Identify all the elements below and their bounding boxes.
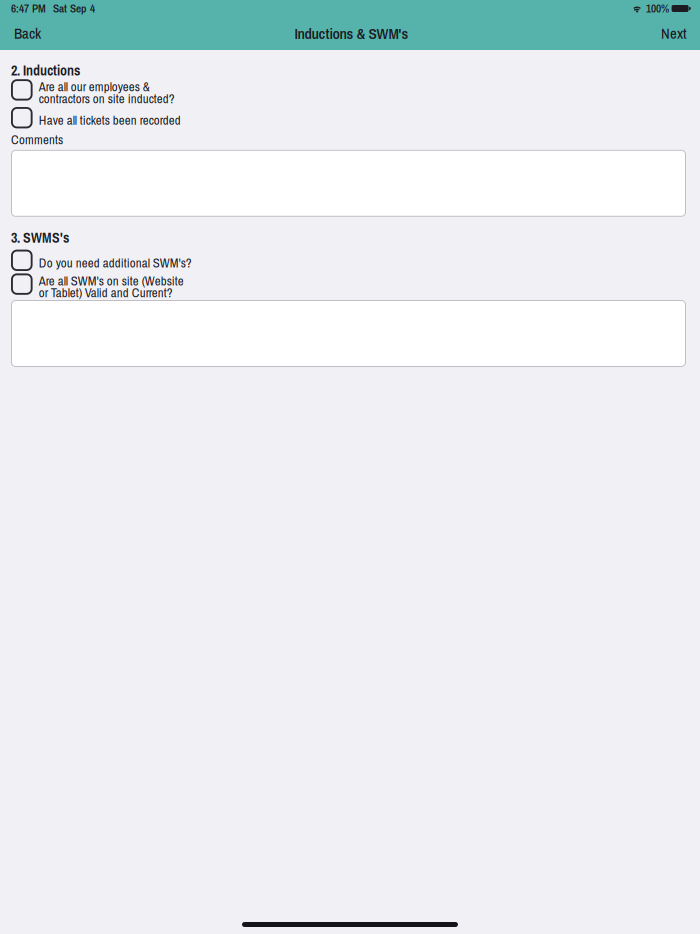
staticText: Comments [11, 131, 63, 148]
staticText: Are all SWM's on site (Website [39, 272, 184, 289]
button[interactable]: Are all SWM's on site (Website [0, 50, 700, 71]
staticText: Inductions & SWM's [294, 23, 408, 44]
button[interactable]: Comments field [0, 50, 700, 117]
button[interactable]: Do you need additional SWM's? [0, 50, 700, 71]
button[interactable]: Are all our employees & [0, 50, 700, 71]
staticText: Back [14, 24, 41, 43]
staticText: 2. Inductions [11, 61, 80, 80]
staticText: Do you need additional SWM's? [39, 254, 192, 271]
button[interactable]: Have all tickets been recorded [0, 50, 700, 71]
staticText: Have all tickets been recorded [39, 112, 181, 129]
button[interactable]: Comments field [0, 50, 700, 117]
staticText: Are all our employees & [39, 78, 150, 95]
button[interactable]: Next [648, 17, 700, 50]
button[interactable]: Back [0, 17, 55, 50]
staticText: contractors on site inducted? [39, 90, 175, 107]
staticText: or Tablet) Valid and Current? [39, 284, 173, 301]
staticText: 100% [646, 1, 669, 16]
staticText: Next [661, 24, 687, 43]
staticText: 3. SWMS's [11, 228, 69, 247]
staticText: Sat Sep 4 [53, 1, 95, 16]
staticText: 6:47 PM [11, 1, 46, 16]
